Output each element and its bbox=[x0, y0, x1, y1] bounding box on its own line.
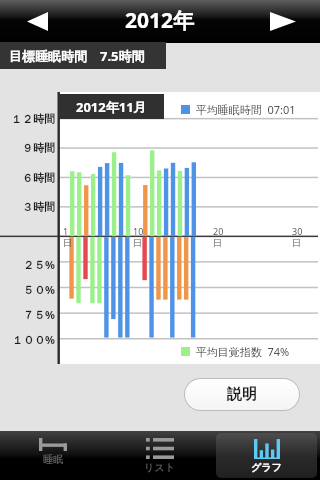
button[interactable]: 目標睡眠時間 7.5時間 bbox=[0, 42, 166, 69]
staticText: リスト bbox=[144, 461, 175, 474]
staticText: １００% bbox=[12, 332, 55, 347]
button[interactable]: 次の年 bbox=[262, 0, 304, 43]
staticText: グラフ bbox=[251, 461, 282, 474]
staticText: 2012年11月 bbox=[76, 98, 147, 116]
staticText: ９時間 bbox=[22, 141, 55, 155]
staticText: 目標睡眠時間 7.5時間 bbox=[9, 47, 145, 65]
staticText: 20 bbox=[213, 225, 224, 237]
button[interactable]: 2012年11月 bbox=[58, 94, 164, 119]
staticText: １２時間 bbox=[11, 112, 55, 126]
staticText: ２５% bbox=[23, 257, 55, 272]
staticText: 10 bbox=[133, 225, 144, 237]
staticText: ６時間 bbox=[22, 171, 55, 185]
staticText: ７５% bbox=[23, 307, 55, 322]
staticText: 日 bbox=[133, 237, 142, 248]
staticText: 1 bbox=[63, 225, 69, 237]
button[interactable]: リスト bbox=[109, 433, 210, 478]
staticText: 説明 bbox=[227, 385, 257, 404]
button[interactable]: 説明 bbox=[185, 379, 299, 410]
staticText: ３時間 bbox=[22, 200, 55, 214]
staticText: 日 bbox=[63, 237, 72, 248]
button[interactable]: グラフ bbox=[216, 433, 317, 478]
staticText: 日 bbox=[213, 237, 222, 248]
staticText: 平均睡眠時間 07:01 bbox=[190, 102, 296, 117]
staticText: 2012年 bbox=[125, 6, 195, 35]
staticText: 日 bbox=[292, 237, 301, 248]
staticText: ５０% bbox=[23, 282, 55, 297]
staticText: 平均目覚指数 74% bbox=[190, 344, 290, 359]
button[interactable]: 前の年 bbox=[16, 0, 58, 43]
staticText: 睡眠 bbox=[43, 453, 63, 466]
staticText: 30 bbox=[292, 225, 303, 237]
button[interactable]: 睡眠 bbox=[3, 433, 103, 478]
